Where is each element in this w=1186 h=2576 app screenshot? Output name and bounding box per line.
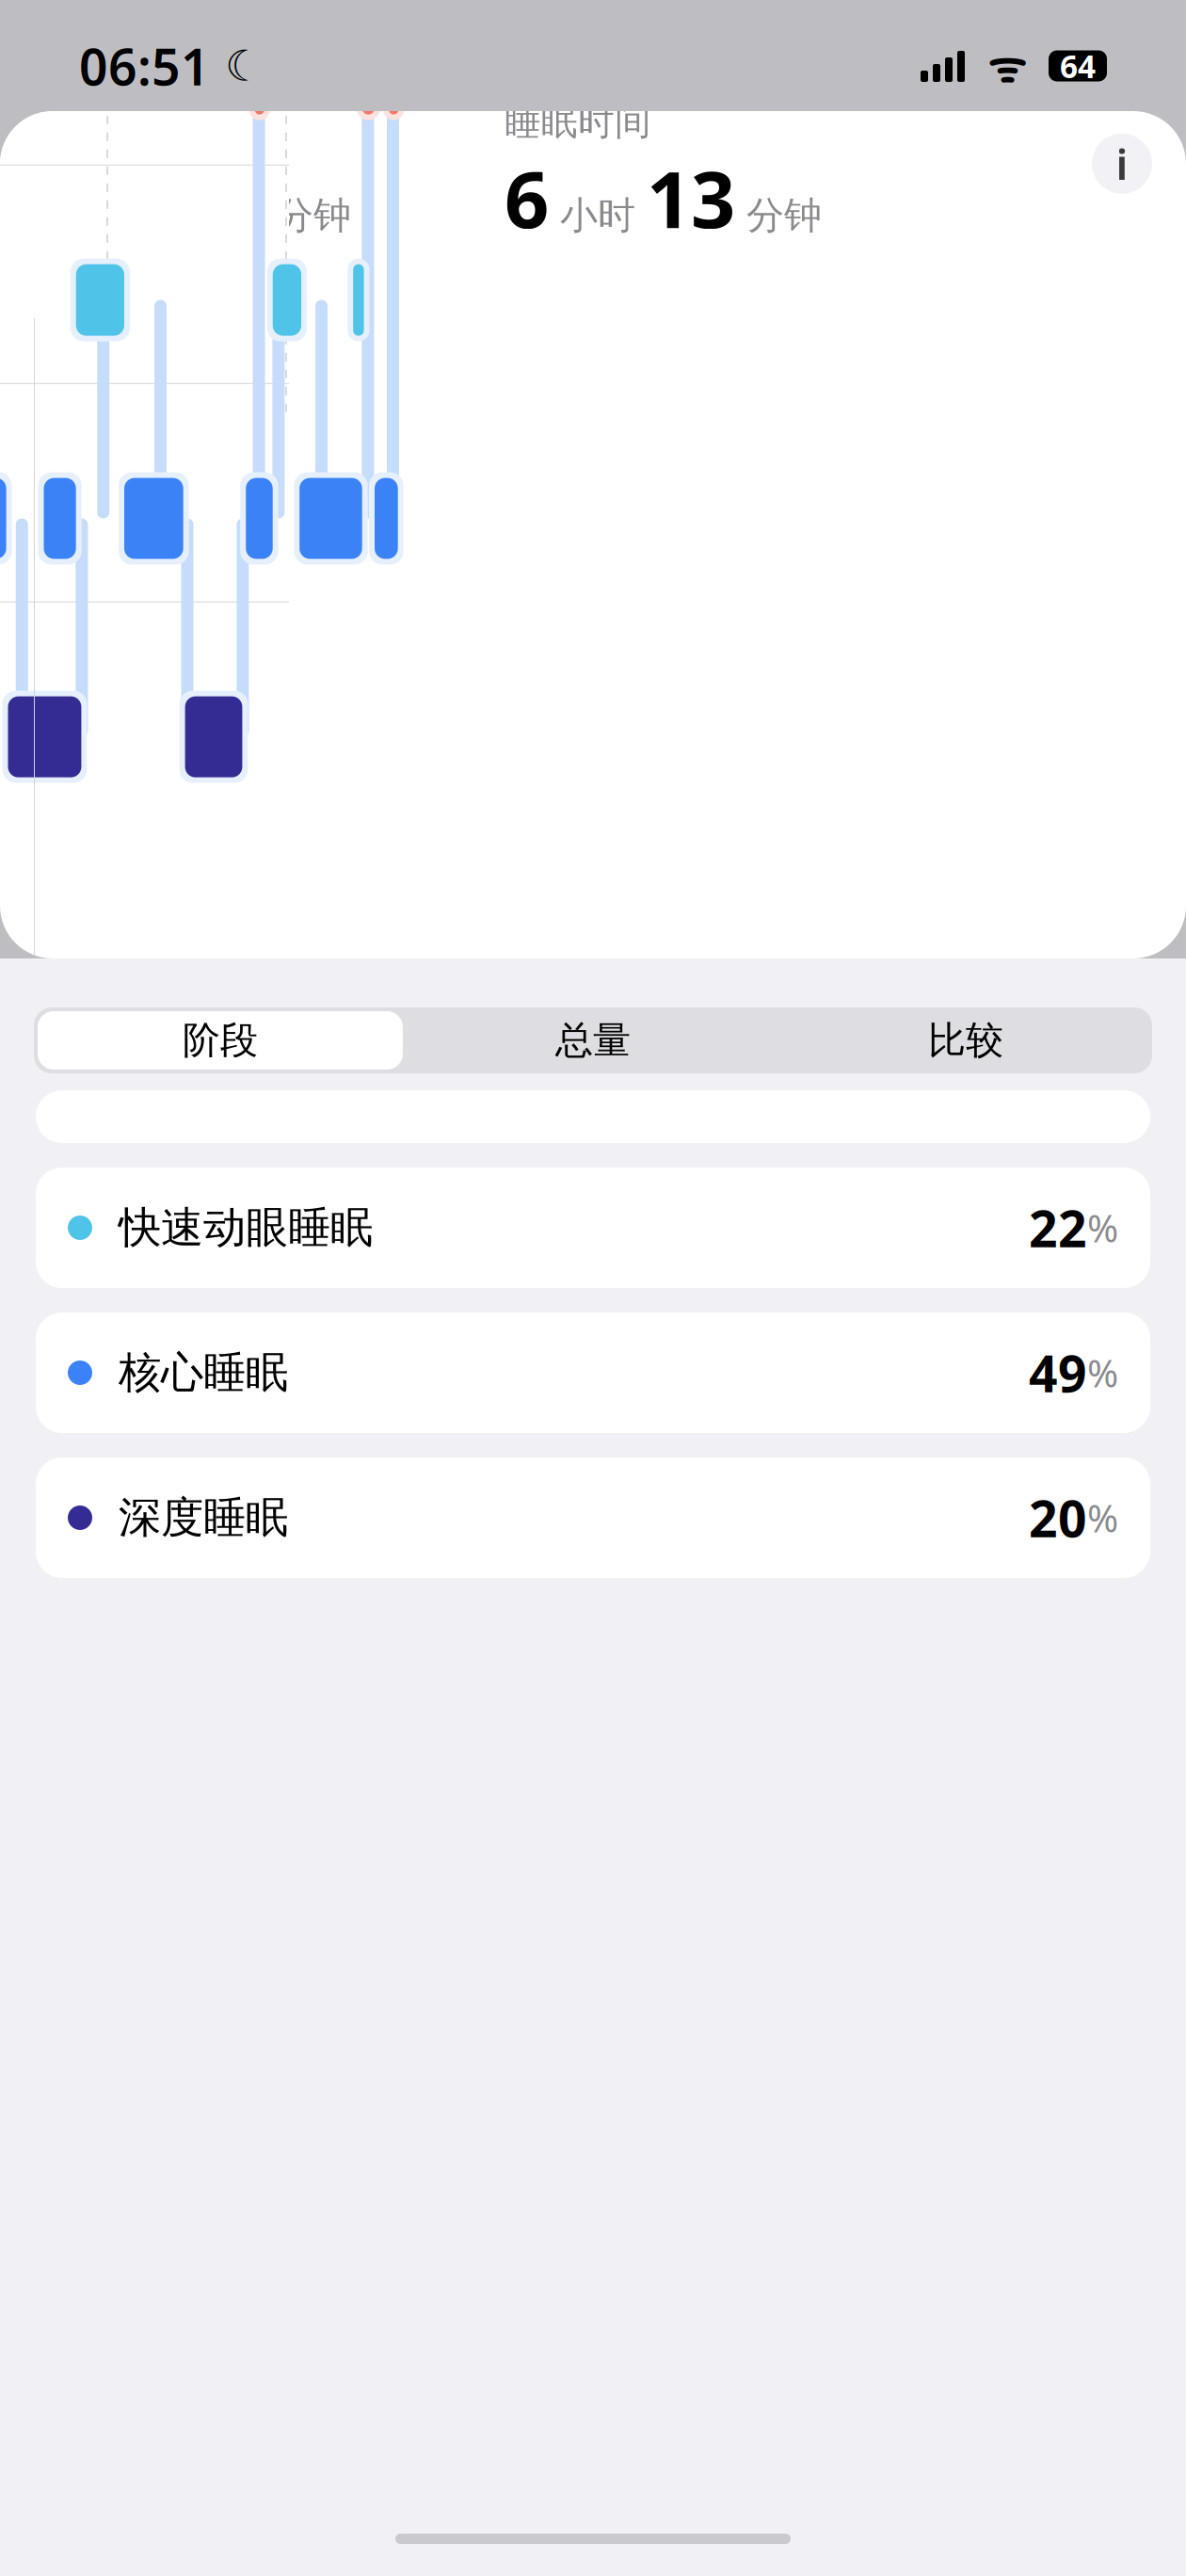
staticText: 核心睡眠 [92,1347,288,1399]
staticText: 6 [34,146,78,250]
button[interactable]: 信息 [1092,134,1152,194]
staticText: i [1116,135,1128,192]
staticText: % [1087,1203,1118,1253]
staticText: 6 [505,146,549,250]
staticText: 分钟 [264,192,351,239]
staticText: 23:00 [105,1194,202,1244]
staticText: 64 [1060,45,1096,87]
staticText: 22 [1029,1194,1087,1261]
staticText: 01:00 [284,1194,381,1244]
staticText: 20 [1029,1484,1087,1551]
button[interactable]: 深度睡眠 [36,1457,1150,1578]
staticText: % [1087,1348,1118,1398]
staticText: 比较 [928,1017,1003,1063]
staticText: 2026年4月10日 [34,253,298,303]
staticText: 卧床时间 [34,100,181,144]
staticText: 06:51 [79,33,210,99]
staticText: 睡眠时间 [505,100,651,144]
staticText: 分钟 [735,192,822,239]
staticText: 48 [176,146,264,250]
staticText: 阶段 [183,1017,258,1063]
button[interactable]: 比较 [779,1007,1152,1073]
button[interactable]: 核心睡眠 [36,1312,1150,1433]
button[interactable]: 日 [34,13,313,79]
staticText: 总量 [555,1017,631,1063]
staticText: 深度睡眠 [92,1492,288,1544]
staticText: ᯤ [965,38,1049,94]
staticText: 13 [647,146,735,250]
staticText: 49 [1029,1339,1087,1406]
staticText: % [1087,1493,1118,1543]
button[interactable]: 阶段 [34,1007,407,1073]
staticText: 小时 [78,192,176,239]
staticText: 日 [155,23,192,69]
button[interactable]: 快速动眼睡眠 [36,1167,1150,1288]
button[interactable]: 6个月 [873,13,1152,79]
staticText: 快速动眼睡眠 [92,1202,373,1254]
button[interactable]: 总量 [407,1007,779,1073]
staticText: ☾ [210,42,264,90]
staticText: 小时 [549,192,647,239]
staticText: 6个月 [964,21,1061,71]
